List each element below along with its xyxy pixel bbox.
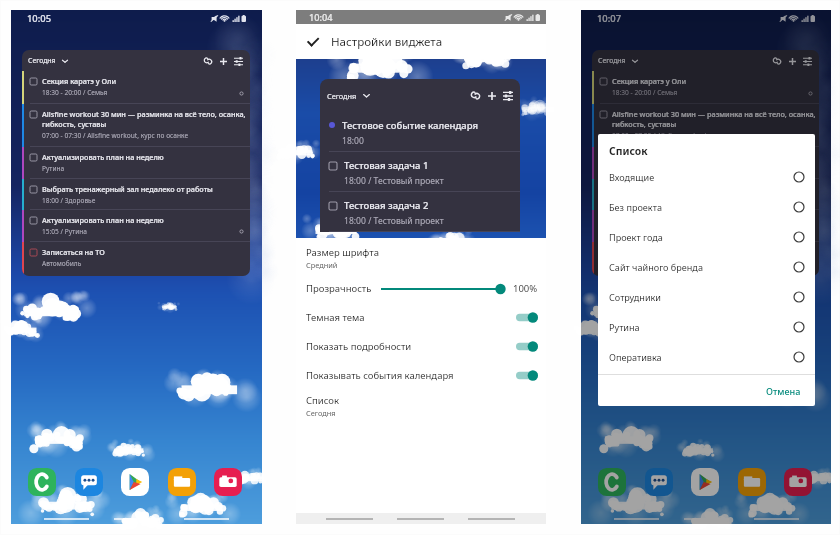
staticText: Актуализировать план на неделю xyxy=(42,152,164,162)
button[interactable]: Сегодня xyxy=(22,50,250,71)
button[interactable]: Phone xyxy=(28,468,56,496)
staticText: Автомобиль xyxy=(42,259,82,268)
staticText: Показывать события календаря xyxy=(306,369,454,382)
staticText: Allsfine workout 30 мин — разминка на вс… xyxy=(612,109,816,129)
staticText: Allsfine workout 30 мин — разминка на вс… xyxy=(42,109,247,129)
button[interactable]: Messages xyxy=(645,468,673,496)
button[interactable]: Секция каратэ у Оли xyxy=(22,71,250,104)
staticText: Сегодня xyxy=(306,408,336,418)
staticText: 15:05 / Рутина xyxy=(42,227,87,236)
staticText: 18:00 / Здоровье xyxy=(42,196,96,205)
button[interactable]: Play Store xyxy=(691,468,719,496)
button[interactable]: Add xyxy=(217,55,229,67)
staticText: Рутина xyxy=(42,164,65,173)
button[interactable]: Актуализировать план на неделю xyxy=(22,210,250,242)
staticText: Настройки виджета xyxy=(331,34,443,50)
button[interactable]: Widget settings xyxy=(232,55,244,67)
button[interactable]: Allsfine workout 30 мин — разминка на вс… xyxy=(592,104,819,147)
staticText: Сегодня xyxy=(327,91,357,101)
button[interactable]: Оперативка xyxy=(598,342,815,372)
staticText: 15:05 / Рутина xyxy=(612,227,657,236)
button[interactable]: Записаться на ТО xyxy=(22,242,250,276)
staticText: Секция каратэ у Оли xyxy=(42,76,117,86)
staticText: Тестовая задача 2 xyxy=(344,199,429,212)
button[interactable]: Files xyxy=(168,468,196,496)
button[interactable]: Входящие xyxy=(598,162,815,192)
button[interactable]: Выбрать тренажерный зал недалеко от рабо… xyxy=(592,179,819,210)
staticText: Автомобиль xyxy=(612,259,652,268)
button[interactable]: Секция каратэ у Оли xyxy=(592,71,819,104)
staticText: Секция каратэ у Оли xyxy=(612,76,687,86)
staticText: 18:30 - 20:00 / Семья xyxy=(612,88,678,97)
button[interactable]: Play Store xyxy=(121,468,149,496)
staticText: Размер шрифта xyxy=(306,246,379,259)
button[interactable]: Сегодня xyxy=(592,50,819,71)
button[interactable]: Refresh xyxy=(469,89,482,102)
staticText: Тестовая задача 1 xyxy=(344,159,429,172)
button[interactable]: Актуализировать план на неделю xyxy=(592,210,819,242)
button[interactable]: Сайт чайного бренда xyxy=(598,252,815,282)
staticText: Сегодня xyxy=(598,56,626,65)
staticText: Сегодня xyxy=(28,56,56,65)
staticText: Оперативка xyxy=(609,351,662,363)
staticText: Отмена xyxy=(766,385,801,397)
button[interactable]: Тестовое событие календаря xyxy=(320,112,520,152)
staticText: Выбрать тренажерный зал недалеко от рабо… xyxy=(42,184,213,194)
button[interactable]: Актуализировать план на неделю xyxy=(592,147,819,179)
button[interactable]: Записаться на ТО xyxy=(592,242,819,276)
button[interactable]: Тестовая задача 2 xyxy=(320,192,520,232)
button[interactable]: Показать подробности xyxy=(296,332,546,361)
button[interactable]: Прозрачность xyxy=(296,274,546,303)
button[interactable]: Выбрать тренажерный зал недалеко от рабо… xyxy=(22,179,250,210)
staticText: Рутина xyxy=(609,321,640,333)
staticText: 10:04 xyxy=(309,11,333,24)
button[interactable]: Messages xyxy=(75,468,103,496)
button[interactable]: Сегодня xyxy=(320,79,520,112)
button[interactable]: Refresh xyxy=(202,55,214,67)
button[interactable]: Done xyxy=(296,24,546,59)
button[interactable]: Phone xyxy=(598,468,626,496)
staticText: Тестовое событие календаря xyxy=(342,119,478,132)
staticText: Список xyxy=(306,394,340,407)
staticText: Прозрачность xyxy=(306,282,372,295)
button[interactable]: Список xyxy=(296,390,546,422)
staticText: Актуализировать план на неделю xyxy=(612,152,734,162)
staticText: Проект года xyxy=(609,231,663,243)
button[interactable]: Размер шрифта xyxy=(296,242,546,274)
button[interactable]: Актуализировать план на неделю xyxy=(22,147,250,179)
button[interactable]: Allsfine workout 30 мин — разминка на вс… xyxy=(22,104,250,147)
staticText: 10:05 xyxy=(27,12,52,25)
button[interactable]: Без проекта xyxy=(598,192,815,222)
button[interactable]: Рутина xyxy=(598,312,815,342)
staticText: 18:00 / Здоровье xyxy=(612,196,666,205)
staticText: 10:07 xyxy=(597,12,622,25)
staticText: 07:00 - 07:30 / Allsfine workout, курс п… xyxy=(612,131,759,140)
button[interactable]: Camera xyxy=(214,468,242,496)
staticText: 07:00 - 07:30 / Allsfine workout, курс п… xyxy=(42,131,189,140)
button[interactable]: Camera xyxy=(784,468,812,496)
staticText: Без проекта xyxy=(609,201,662,213)
button[interactable]: Отмена xyxy=(752,378,815,404)
staticText: Входящие xyxy=(609,171,655,183)
staticText: 18:00 / Тестовый проект xyxy=(344,215,444,227)
other: Done xyxy=(307,36,319,48)
button[interactable]: Показывать события календаря xyxy=(296,361,546,390)
staticText: Список xyxy=(609,144,648,158)
button[interactable]: Widget settings xyxy=(501,89,514,102)
button[interactable]: Сотрудники xyxy=(598,282,815,312)
button[interactable]: Files xyxy=(738,468,766,496)
button[interactable]: Темная тема xyxy=(296,303,546,332)
staticText: Средний xyxy=(306,260,338,270)
staticText: 18:00 xyxy=(342,135,364,147)
staticText: 18:30 - 20:00 / Семья xyxy=(42,88,108,97)
button[interactable]: Add xyxy=(485,89,498,102)
button[interactable]: Refresh xyxy=(771,55,783,67)
button[interactable]: Add xyxy=(786,55,798,67)
button[interactable]: Тестовая задача 1 xyxy=(320,152,520,192)
button[interactable]: Проект года xyxy=(598,222,815,252)
button[interactable]: Widget settings xyxy=(801,55,813,67)
